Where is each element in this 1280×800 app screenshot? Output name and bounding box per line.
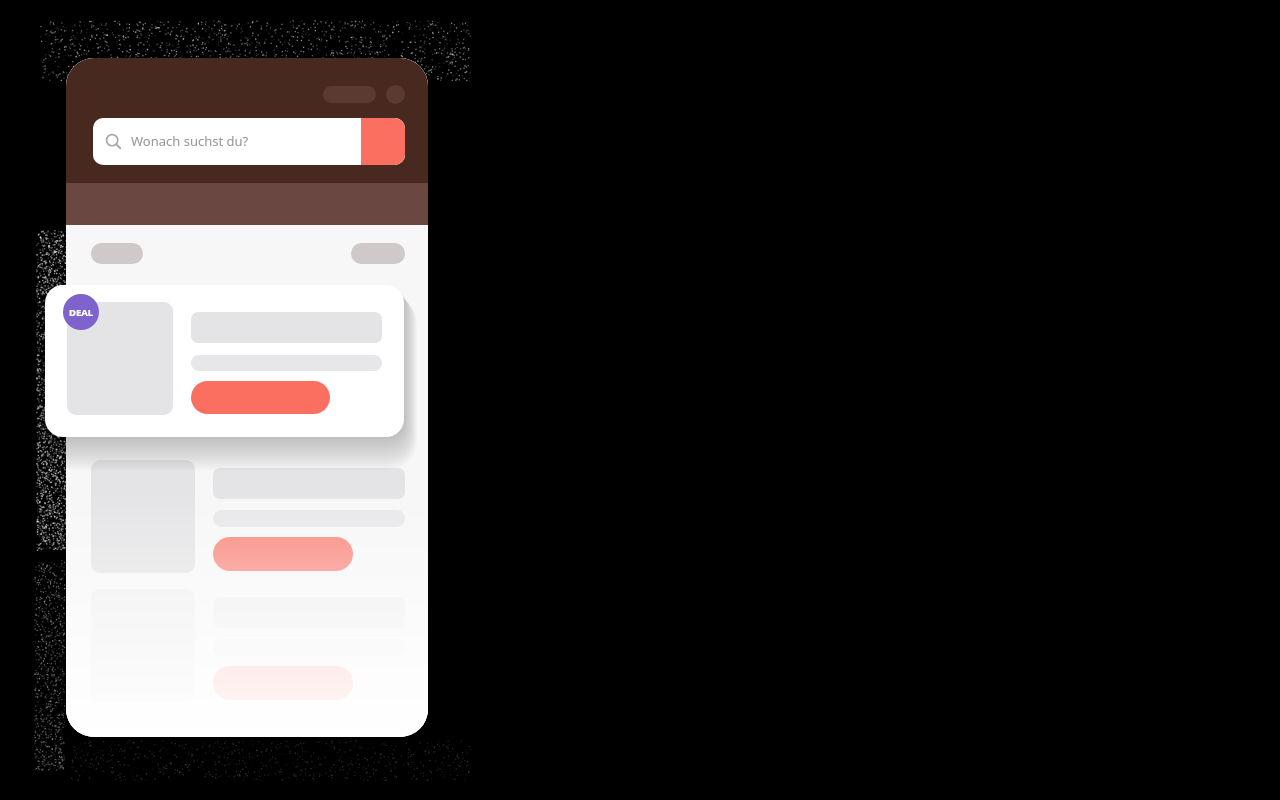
button[interactable]: Angebot ansehen — [213, 537, 353, 571]
button[interactable]: Filter — [91, 243, 143, 264]
button[interactable]: Angebot ansehen — [66, 456, 428, 576]
staticText: Wonach suchst du? — [131, 132, 249, 150]
button[interactable]: Angebot ansehen — [213, 666, 353, 700]
button[interactable]: Account — [386, 85, 405, 104]
button[interactable]: Language — [323, 86, 376, 103]
staticText: DEAL — [69, 306, 94, 319]
button[interactable]: Search — [361, 118, 405, 165]
button[interactable]: Deal ansehen — [191, 381, 330, 414]
button[interactable]: Deal ansehen — [45, 285, 404, 437]
button[interactable]: Angebot ansehen — [66, 585, 428, 705]
button[interactable]: Wonach suchst du? — [93, 118, 405, 165]
button[interactable]: Deal — [63, 294, 99, 330]
button[interactable]: Sort — [351, 243, 405, 264]
